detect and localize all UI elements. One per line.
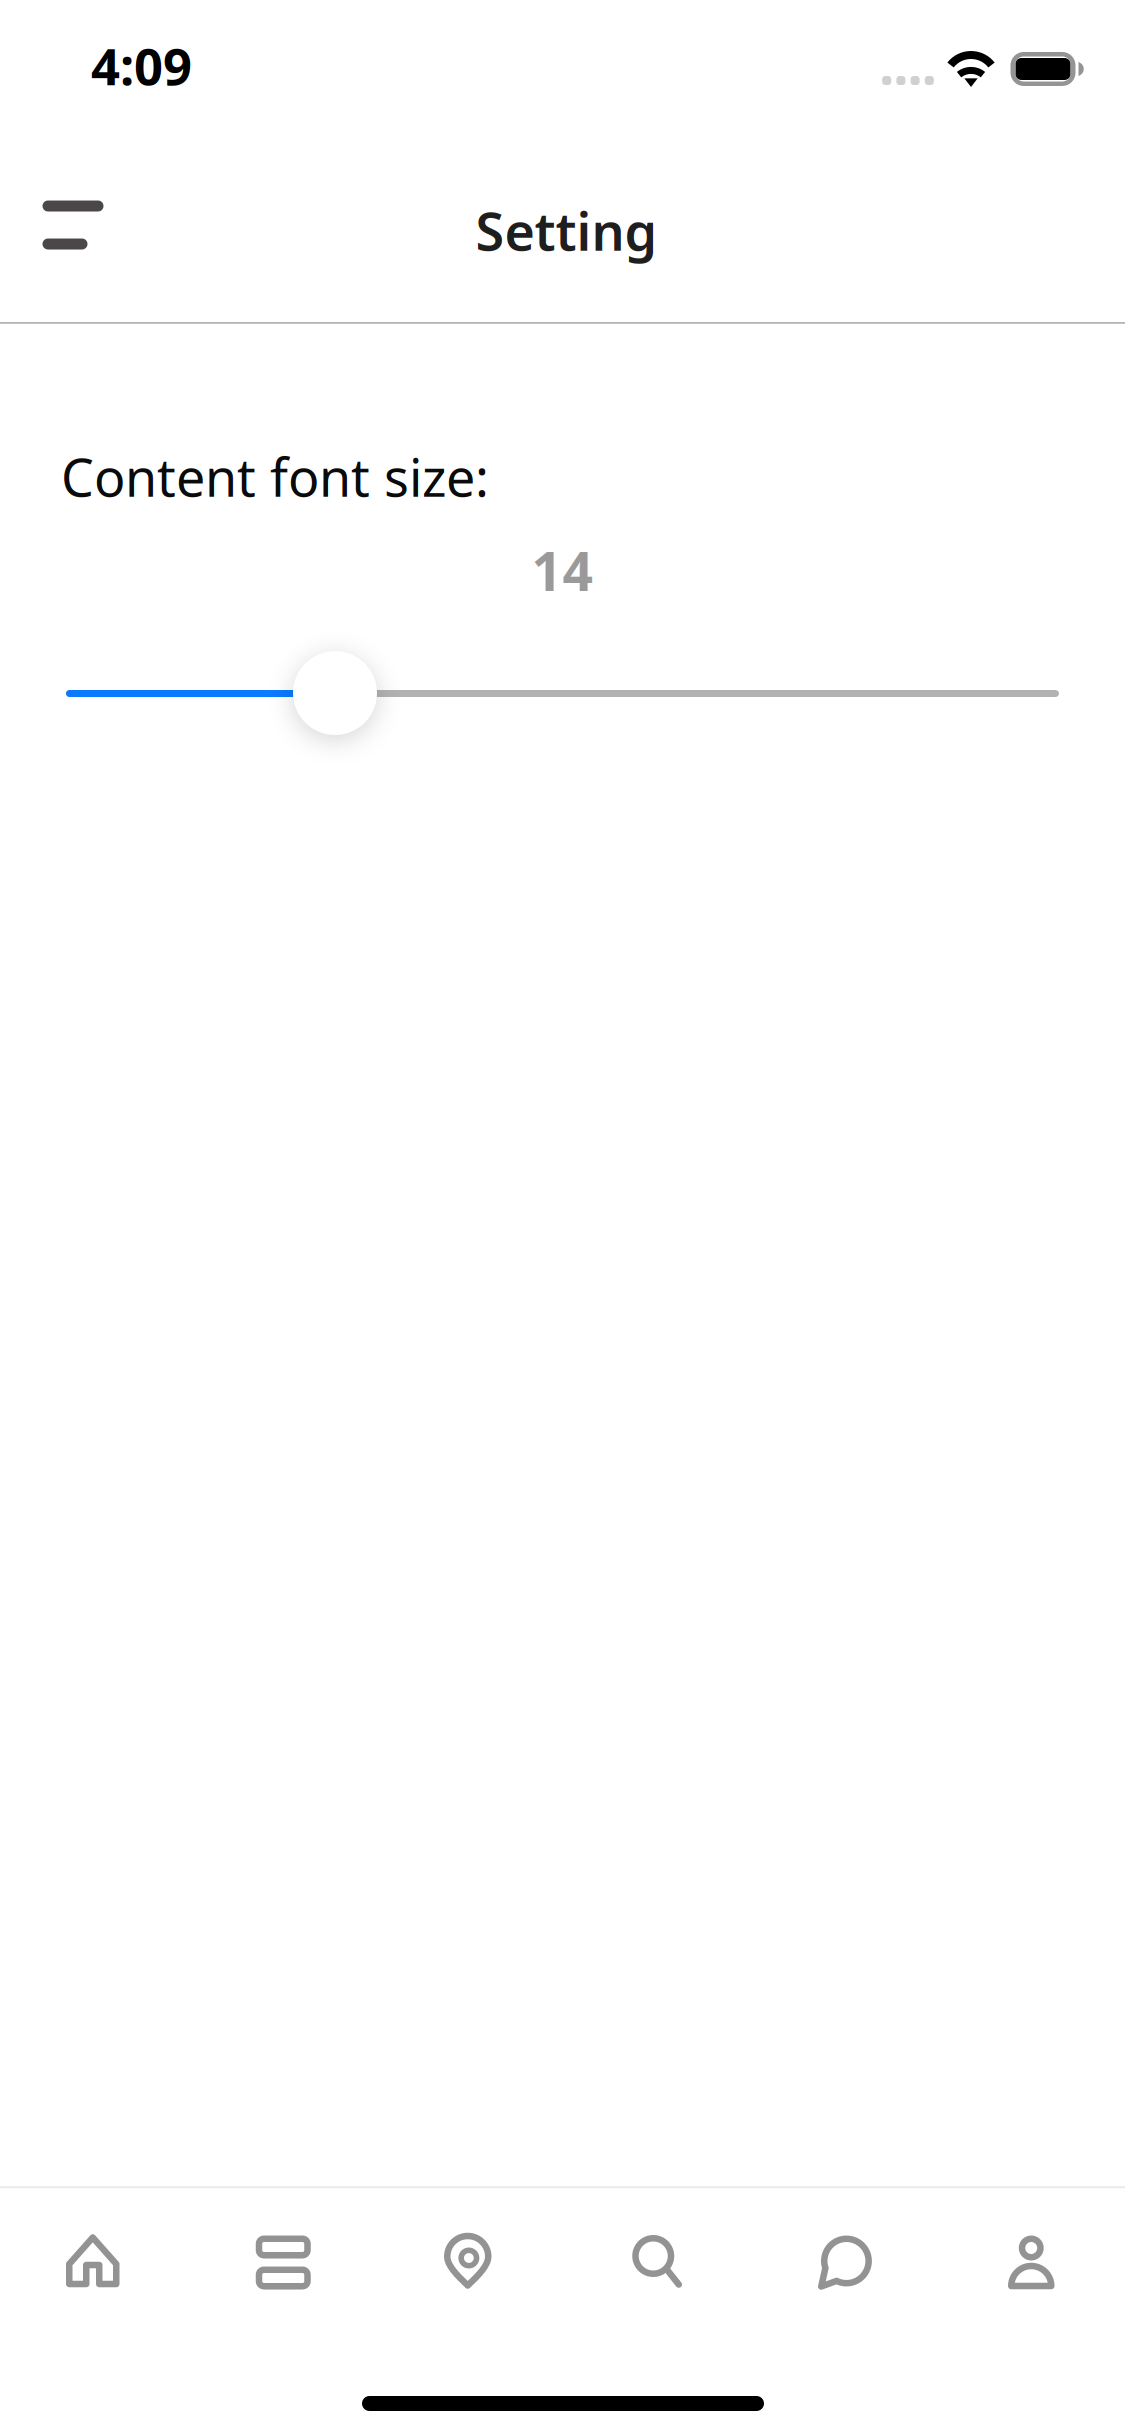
staticText: Content font size: xyxy=(61,442,489,511)
button[interactable]: Search xyxy=(562,2201,750,2321)
button[interactable]: Places xyxy=(375,2201,562,2321)
button[interactable]: Messages xyxy=(750,2201,937,2321)
button[interactable]: Home xyxy=(0,2201,187,2321)
staticText: 4:09 xyxy=(91,32,192,99)
button[interactable]: Menu xyxy=(18,179,128,271)
staticText: Setting xyxy=(475,196,657,265)
staticText: 14 xyxy=(531,535,593,606)
button[interactable]: Profile xyxy=(937,2201,1125,2321)
button[interactable]: Feed xyxy=(187,2201,375,2321)
